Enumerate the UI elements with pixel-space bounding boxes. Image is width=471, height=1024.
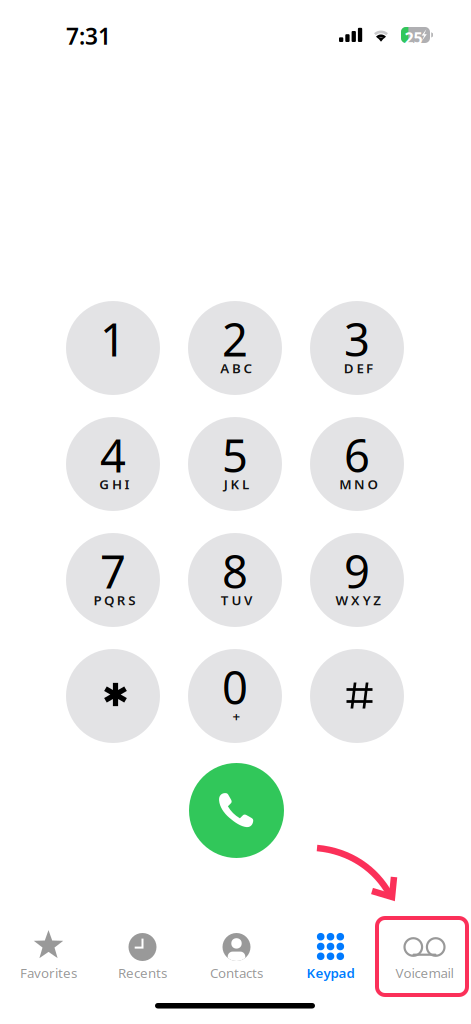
- button[interactable]: 2: [188, 301, 282, 395]
- staticText: 5: [222, 425, 248, 485]
- button[interactable]: Call: [189, 763, 284, 858]
- staticText: 1: [100, 309, 126, 369]
- staticText: JKL: [224, 475, 249, 493]
- staticText: Keypad: [306, 964, 354, 982]
- button[interactable]: 0: [188, 649, 282, 743]
- button[interactable]: 9: [310, 533, 404, 627]
- staticText: Favorites: [20, 964, 77, 982]
- staticText: 9: [344, 541, 370, 601]
- button[interactable]: Keypad: [283, 926, 377, 982]
- button[interactable]: Star: [66, 649, 160, 743]
- button[interactable]: 7: [66, 533, 160, 627]
- button[interactable]: Favorites: [1, 926, 95, 982]
- button[interactable]: Recents: [95, 926, 189, 982]
- staticText: 0: [222, 657, 248, 717]
- staticText: 2: [222, 309, 248, 369]
- staticText: GHI: [99, 475, 129, 493]
- staticText: 25: [404, 27, 422, 49]
- staticText: 3: [344, 309, 370, 369]
- button[interactable]: Contacts: [189, 926, 283, 982]
- button[interactable]: Pound: [310, 649, 404, 743]
- button[interactable]: 5: [188, 417, 282, 511]
- staticText: MNO: [339, 475, 377, 493]
- staticText: 8: [222, 541, 248, 601]
- staticText: 7:31: [66, 21, 111, 51]
- staticText: TUV: [221, 591, 252, 609]
- button[interactable]: 6: [310, 417, 404, 511]
- button[interactable]: 1: [66, 301, 160, 395]
- button[interactable]: Voicemail: [377, 926, 471, 982]
- staticText: Voicemail: [395, 964, 453, 982]
- button[interactable]: 3: [310, 301, 404, 395]
- staticText: WXYZ: [335, 591, 381, 609]
- staticText: Contacts: [210, 964, 263, 982]
- staticText: +: [232, 707, 240, 725]
- staticText: PQRS: [93, 591, 135, 609]
- staticText: DEF: [344, 359, 373, 377]
- staticText: 4: [100, 425, 126, 485]
- button[interactable]: 4: [66, 417, 160, 511]
- staticText: Recents: [118, 964, 167, 982]
- staticText: 7: [100, 541, 126, 601]
- button[interactable]: 8: [188, 533, 282, 627]
- staticText: 6: [344, 425, 370, 485]
- staticText: ABC: [220, 359, 252, 377]
